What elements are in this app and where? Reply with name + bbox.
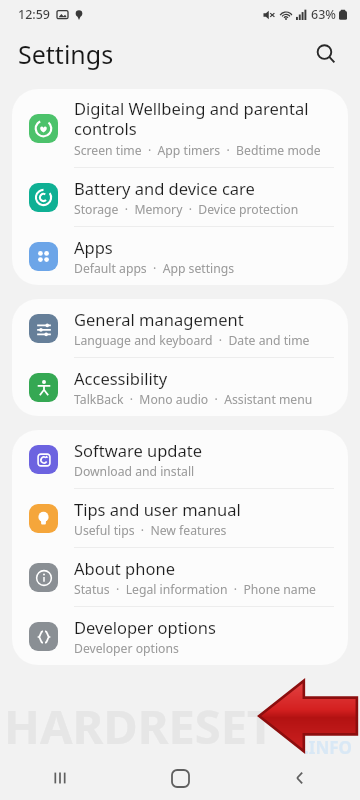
button[interactable]: Accessibility: [12, 358, 348, 416]
staticText: Battery and device care: [74, 177, 255, 199]
button[interactable]: Recent apps: [0, 756, 120, 800]
button[interactable]: Software update: [12, 430, 348, 488]
staticText: Tips and user manual: [74, 498, 241, 520]
staticText: About phone: [74, 557, 175, 579]
button[interactable]: General management: [12, 299, 348, 357]
button[interactable]: Developer options: [12, 607, 348, 665]
button[interactable]: Apps: [12, 227, 348, 285]
staticText: Settings: [18, 37, 114, 71]
button[interactable]: Home: [120, 756, 240, 800]
staticText: Default apps · App settings: [74, 260, 235, 277]
staticText: Language and keyboard · Date and time: [74, 332, 310, 349]
staticText: Software update: [74, 439, 202, 461]
staticText: Developer options: [74, 616, 216, 638]
staticText: Useful tips · New features: [74, 522, 227, 539]
button[interactable]: Digital Wellbeing and parental controls: [12, 89, 348, 167]
staticText: Download and install: [74, 463, 195, 480]
staticText: TalkBack · Mono audio · Assistant menu: [74, 391, 313, 408]
button[interactable]: About phone: [12, 548, 348, 606]
staticText: 12:59: [18, 6, 51, 23]
staticText: Apps: [74, 236, 113, 258]
button[interactable]: Back: [240, 756, 360, 800]
button[interactable]: Battery and device care: [12, 168, 348, 226]
staticText: Screen time · App timers · Bedtime mode: [74, 142, 321, 159]
staticText: HARDRESET: [4, 694, 275, 758]
button[interactable]: Search: [306, 34, 346, 74]
staticText: General management: [74, 308, 244, 330]
staticText: .INFO: [304, 736, 352, 759]
staticText: Status · Legal information · Phone name: [74, 581, 316, 598]
staticText: 63%: [311, 6, 336, 23]
button[interactable]: Tips and user manual: [12, 489, 348, 547]
staticText: Developer options: [74, 640, 179, 657]
staticText: Storage · Memory · Device protection: [74, 201, 299, 218]
staticText: Accessibility: [74, 367, 168, 389]
staticText: Digital Wellbeing and parental controls: [74, 97, 309, 140]
